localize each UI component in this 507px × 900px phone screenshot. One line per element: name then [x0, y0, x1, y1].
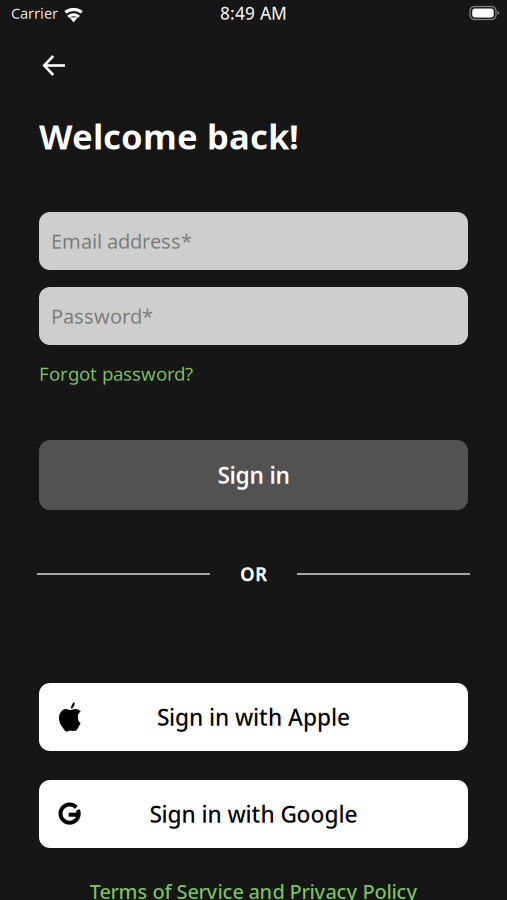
button[interactable]: Forgot password?: [37, 357, 195, 390]
button[interactable]: Back: [27, 38, 82, 93]
staticText: Sign in with Apple: [157, 702, 350, 732]
staticText: Terms of Service and Privacy Policy: [89, 878, 417, 900]
button[interactable]: Terms of Service and Privacy Policy: [39, 878, 468, 900]
staticText: Sign in: [217, 460, 289, 490]
staticText: Password*: [51, 303, 153, 329]
staticText: 8:49 AM: [220, 1, 287, 24]
button[interactable]: Sign in with Apple: [39, 683, 468, 751]
button[interactable]: Sign in: [39, 440, 468, 510]
staticText: Welcome back!: [39, 113, 299, 159]
button[interactable]: Password*: [39, 287, 468, 345]
staticText: Forgot password?: [39, 361, 193, 386]
button[interactable]: Email address*: [39, 212, 468, 270]
staticText: Carrier: [11, 3, 58, 23]
staticText: Email address*: [51, 228, 192, 254]
staticText: Sign in with Google: [149, 799, 357, 829]
button[interactable]: Sign in with Google: [39, 780, 468, 848]
staticText: OR: [240, 562, 267, 586]
